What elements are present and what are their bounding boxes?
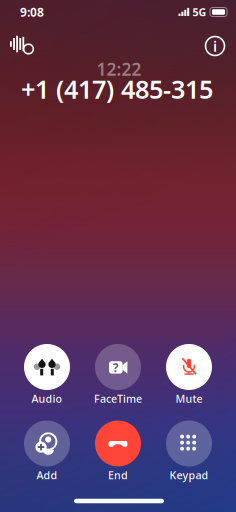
staticText: 9:08 — [20, 4, 44, 20]
button[interactable]: Call details — [199, 30, 231, 62]
staticText: +1 (417) 485-315 — [21, 72, 213, 106]
staticText: Audio — [31, 391, 62, 406]
staticText: 5G — [192, 5, 206, 19]
button[interactable]: Audio — [13, 333, 81, 401]
staticText: Add — [36, 468, 57, 482]
button[interactable]: Add — [13, 409, 81, 477]
button[interactable]: Mute — [155, 333, 223, 401]
button[interactable]: Keypad — [155, 409, 223, 477]
staticText: Keypad — [169, 468, 208, 482]
staticText: End — [108, 468, 128, 482]
staticText: 12:22 — [96, 57, 141, 80]
button[interactable]: Voice isolation — [5, 29, 40, 60]
button[interactable]: End — [84, 409, 152, 477]
staticText: ? — [113, 360, 119, 375]
staticText: FaceTime — [94, 391, 142, 406]
staticText: Mute — [175, 391, 202, 406]
staticText: i — [213, 36, 217, 56]
button[interactable]: ? — [84, 333, 152, 401]
